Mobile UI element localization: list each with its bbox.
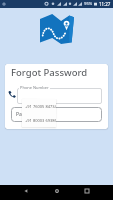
button[interactable]: Password (11, 107, 102, 122)
button[interactable]: Home (48, 185, 65, 197)
button[interactable] (17, 88, 102, 104)
button[interactable]: +91 80003 69386 (22, 113, 56, 127)
staticText: Password (16, 111, 39, 118)
staticText: +91 76005 84734 (25, 104, 56, 109)
staticText: Forgot Password (11, 66, 88, 79)
button[interactable]: Recent apps (79, 185, 95, 197)
staticText: 95% (84, 1, 93, 7)
staticText: Phone Number (20, 85, 49, 90)
button[interactable]: +91 76005 84734 (22, 99, 56, 113)
button[interactable]: Back (18, 185, 34, 197)
staticText: 11:27 (99, 1, 111, 7)
staticText: +91 80003 69386 (25, 118, 56, 123)
